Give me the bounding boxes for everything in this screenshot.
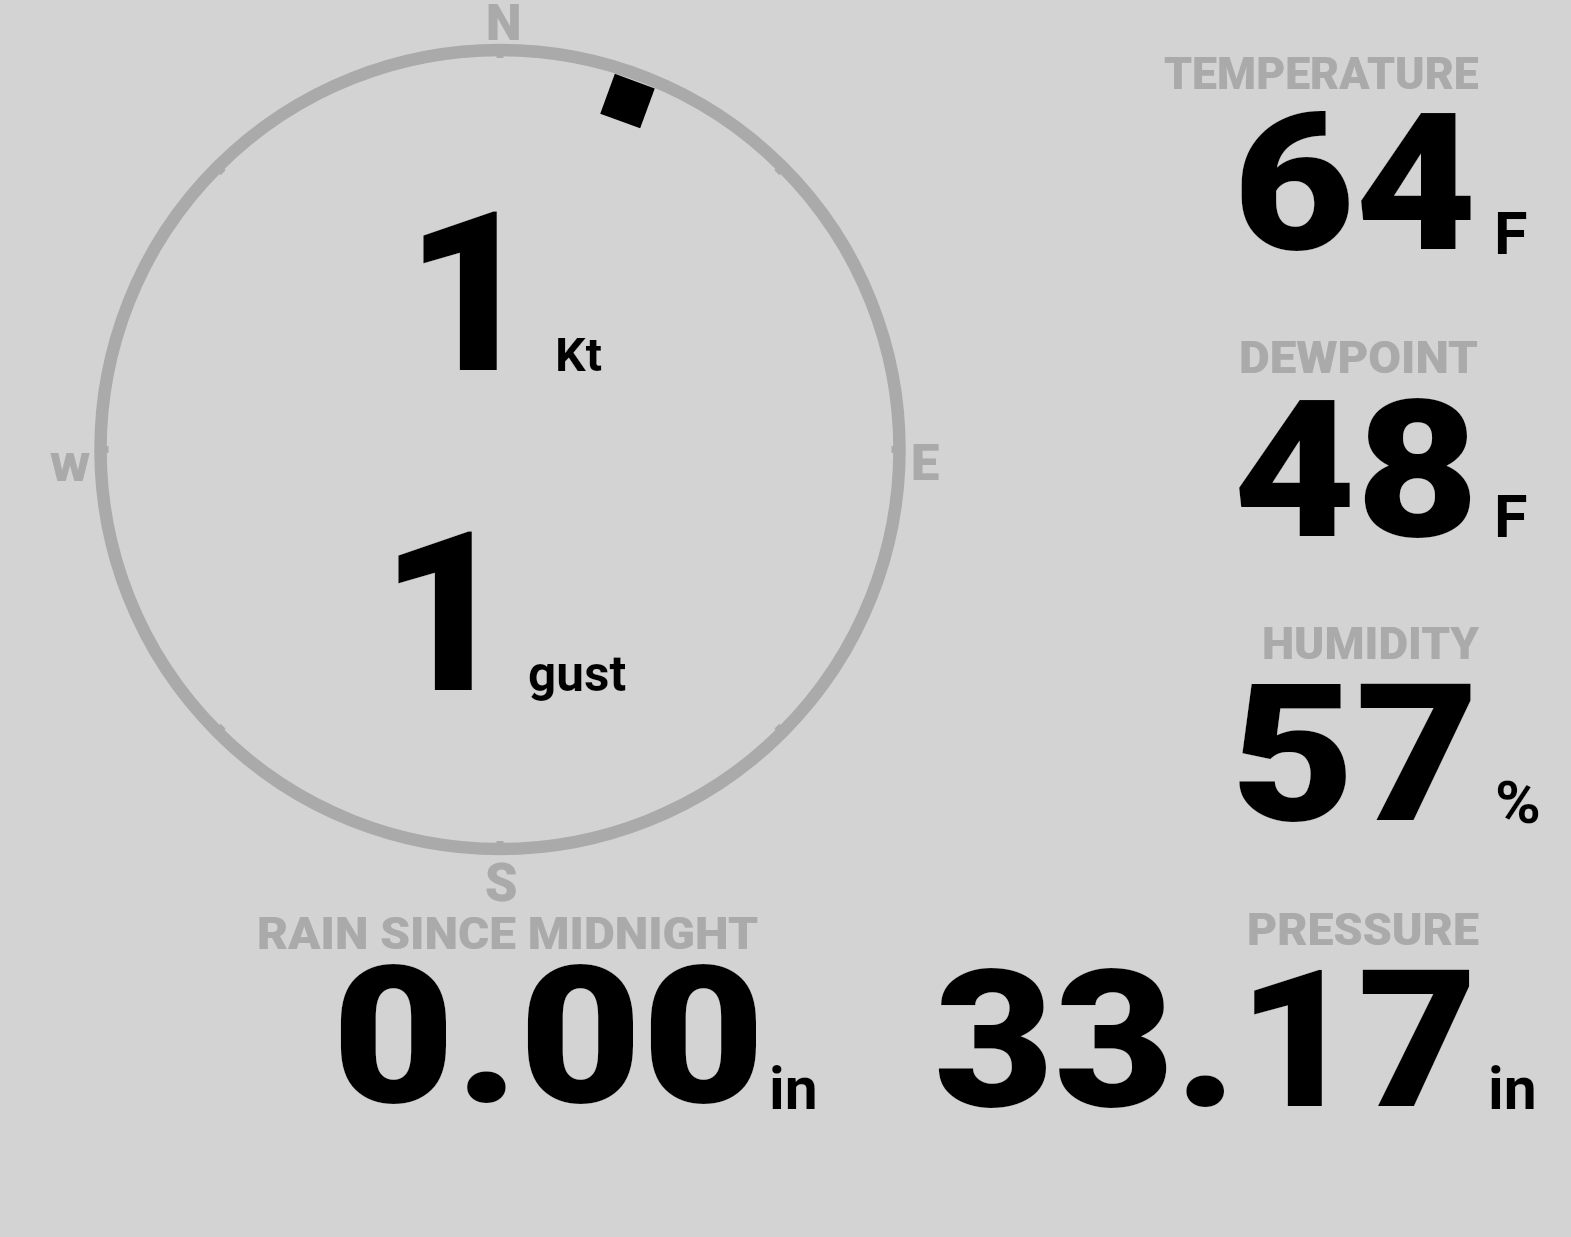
button[interactable]: Rain since midnight 0.00 inches xyxy=(240,895,840,1120)
staticText: Kt xyxy=(555,328,602,382)
staticText: 33.17 xyxy=(934,929,1478,1153)
staticText: W xyxy=(50,444,91,490)
staticText: in xyxy=(1488,1054,1537,1123)
staticText: RAIN SINCE MIDNIGHT xyxy=(257,908,758,960)
staticText: N xyxy=(486,0,522,52)
staticText: 1 xyxy=(380,484,511,744)
button[interactable]: Pressure 33.17 inches xyxy=(900,895,1550,1120)
staticText: % xyxy=(1495,768,1541,837)
staticText: in xyxy=(769,1054,818,1123)
staticText: HUMIDITY xyxy=(1262,618,1479,670)
staticText: gust xyxy=(528,645,627,703)
button[interactable]: Wind 1 knots, gusting 1, compass xyxy=(100,50,900,850)
staticText: 57 xyxy=(1231,643,1480,867)
staticText: S xyxy=(485,851,518,914)
staticText: 64 xyxy=(1233,72,1477,296)
other: Wind direction dial xyxy=(0,0,1571,1237)
button[interactable]: Dew point 48 degrees F xyxy=(1100,325,1550,550)
staticText: 1 xyxy=(405,164,536,424)
staticText: F xyxy=(1494,199,1528,268)
staticText: DEWPOINT xyxy=(1239,332,1478,384)
staticText: 48 xyxy=(1233,359,1480,583)
button[interactable]: Humidity 57 percent xyxy=(1100,610,1550,835)
staticText: 0.00 xyxy=(332,925,765,1149)
button[interactable]: Temperature 64 degrees F xyxy=(1100,40,1550,265)
staticText: PRESSURE xyxy=(1247,904,1479,956)
staticText: E xyxy=(911,433,940,492)
staticText: F xyxy=(1494,482,1528,551)
staticText: TEMPERATURE xyxy=(1164,48,1479,100)
